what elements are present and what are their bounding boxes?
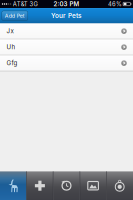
button[interactable]: Jx [0,23,133,39]
button[interactable]: History [53,171,80,200]
staticText: Gfg [6,59,17,67]
button[interactable]: Tags [106,171,133,200]
staticText: Your Pets [51,12,82,20]
button[interactable]: Uh [0,39,133,55]
staticText: Add Pet [5,12,25,19]
button[interactable]: Add Pet [2,11,28,21]
staticText: 2:03 PM [53,0,79,8]
staticText: AT&T [13,0,28,8]
staticText: 46% [108,0,122,8]
staticText: Jx [6,27,13,35]
staticText: 3G [29,0,37,8]
button[interactable]: Pets [0,171,27,200]
button[interactable]: Gfg [0,55,133,71]
staticText: Uh [6,43,15,51]
button[interactable]: Photos [80,171,106,200]
button[interactable]: Add pet [27,171,53,200]
